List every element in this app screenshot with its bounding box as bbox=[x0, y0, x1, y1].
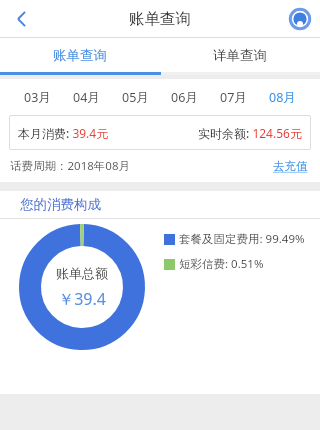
staticText: 账单总额 bbox=[56, 265, 108, 281]
staticText: 短彩信费: 0.51% bbox=[179, 256, 264, 272]
staticText: 05月 bbox=[122, 89, 149, 106]
button[interactable]: 账单查询 bbox=[0, 38, 160, 72]
staticText: 04月 bbox=[73, 89, 100, 106]
staticText: 07月 bbox=[220, 89, 247, 106]
button[interactable]: Back bbox=[0, 0, 44, 37]
staticText: 话费周期：2018年08月 bbox=[10, 158, 130, 174]
button[interactable]: 套餐及固定费用: 99.49% bbox=[164, 231, 305, 247]
staticText: 您的消费构成 bbox=[20, 196, 101, 213]
button[interactable]: 06月 bbox=[169, 85, 200, 110]
button[interactable]: Customer service bbox=[280, 0, 320, 37]
staticText: 06月 bbox=[171, 89, 198, 106]
staticText: 08月 bbox=[269, 89, 296, 106]
button[interactable]: 05月 bbox=[120, 85, 151, 110]
staticText: 03月 bbox=[24, 89, 51, 106]
staticText: 套餐及固定费用: 99.49% bbox=[179, 231, 305, 247]
staticText: ￥39.4 bbox=[58, 288, 106, 310]
button[interactable]: 04月 bbox=[71, 85, 102, 110]
button[interactable]: 08月 bbox=[267, 85, 298, 110]
button[interactable]: 详单查询 bbox=[160, 38, 320, 72]
staticText: 去充值 bbox=[273, 159, 308, 173]
button[interactable]: 07月 bbox=[218, 85, 249, 110]
staticText: 账单查询 bbox=[129, 9, 191, 29]
button[interactable]: 去充值 bbox=[271, 155, 310, 177]
staticText: 本月消费: 39.4元 bbox=[18, 125, 109, 141]
button[interactable]: 03月 bbox=[22, 85, 53, 110]
button[interactable]: 短彩信费: 0.51% bbox=[164, 256, 264, 272]
staticText: 实时余额: 124.56元 bbox=[198, 125, 302, 141]
staticText: 详单查询 bbox=[213, 47, 267, 64]
staticText: 账单查询 bbox=[53, 47, 107, 64]
